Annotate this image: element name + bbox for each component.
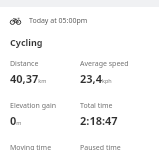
- other: Cycling activity: [10, 15, 21, 26]
- staticText: Moving time: [10, 143, 52, 150]
- staticText: 23,4kph: [80, 71, 112, 86]
- button[interactable]: Cycling activity: [10, 15, 159, 26]
- staticText: Elevation gain: [10, 101, 57, 111]
- staticText: Distance: [10, 59, 39, 69]
- button[interactable]: Paused time: [80, 143, 153, 150]
- staticText: Today at 05:00pm: [29, 16, 88, 26]
- button[interactable]: Average speed: [80, 59, 153, 86]
- staticText: Total time: [80, 101, 113, 111]
- staticText: 2:18:47: [80, 113, 118, 128]
- button[interactable]: Total time: [80, 101, 153, 128]
- button[interactable]: Distance: [10, 59, 80, 86]
- staticText: Cycling: [10, 36, 43, 48]
- button[interactable]: Moving time: [10, 143, 80, 150]
- staticText: Average speed: [80, 59, 129, 69]
- staticText: 40,37km: [10, 71, 47, 86]
- staticText: 0m: [10, 113, 22, 128]
- button[interactable]: Elevation gain: [10, 101, 80, 128]
- staticText: Paused time: [80, 143, 121, 150]
